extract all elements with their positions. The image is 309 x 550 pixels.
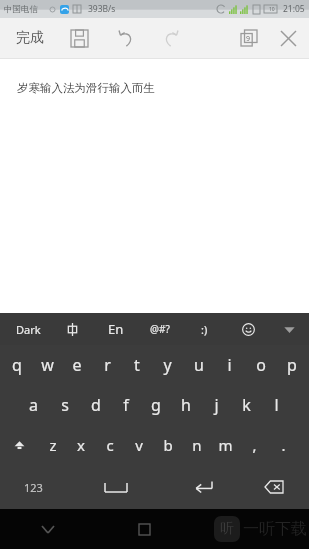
staticText: 完成 bbox=[16, 29, 44, 47]
button[interactable]: t bbox=[122, 345, 152, 385]
staticText: 21:05 bbox=[283, 3, 305, 15]
staticText: m bbox=[218, 435, 233, 455]
staticText: z bbox=[49, 435, 57, 455]
button[interactable]: Shift bbox=[0, 425, 39, 465]
staticText: 一听下载 bbox=[243, 519, 307, 539]
staticText: 10 bbox=[269, 6, 275, 13]
staticText: x bbox=[77, 435, 85, 455]
button[interactable]: :) bbox=[182, 313, 226, 345]
button[interactable]: l bbox=[261, 385, 291, 425]
staticText: p bbox=[287, 354, 297, 376]
staticText: k bbox=[242, 394, 251, 416]
staticText: y bbox=[163, 354, 172, 376]
staticText: j bbox=[214, 394, 219, 416]
button[interactable]: , bbox=[240, 425, 269, 465]
button[interactable]: u bbox=[183, 345, 214, 385]
button[interactable]: g bbox=[141, 385, 171, 425]
staticText: Dark bbox=[16, 322, 41, 337]
button[interactable]: 123 bbox=[0, 465, 66, 509]
staticText: q bbox=[12, 354, 22, 376]
button[interactable]: p bbox=[276, 345, 307, 385]
staticText: 393B/s bbox=[88, 3, 116, 15]
staticText: b bbox=[163, 435, 173, 455]
button[interactable]: v bbox=[124, 425, 153, 465]
staticText: :) bbox=[201, 322, 208, 337]
button[interactable]: w bbox=[32, 345, 62, 385]
button[interactable]: Space bbox=[66, 465, 166, 509]
staticText: 9 bbox=[246, 34, 251, 44]
button[interactable]: @#? bbox=[138, 313, 182, 345]
button[interactable]: . bbox=[269, 425, 298, 465]
button[interactable]: Dark bbox=[6, 313, 50, 345]
button[interactable]: k bbox=[231, 385, 261, 425]
button[interactable]: y bbox=[152, 345, 183, 385]
staticText: , bbox=[252, 435, 257, 455]
button[interactable]: Enter bbox=[166, 465, 239, 509]
staticText: @#? bbox=[150, 322, 170, 336]
staticText: s bbox=[61, 394, 69, 416]
button[interactable]: Emoji bbox=[226, 313, 270, 345]
button[interactable]: Save bbox=[64, 23, 94, 53]
staticText: f bbox=[123, 394, 129, 416]
button[interactable]: f bbox=[111, 385, 141, 425]
button[interactable]: j bbox=[201, 385, 231, 425]
button[interactable]: z bbox=[39, 425, 67, 465]
staticText: n bbox=[192, 435, 202, 455]
button[interactable]: i bbox=[214, 345, 245, 385]
button[interactable]: Backspace bbox=[239, 465, 309, 509]
button[interactable]: Recents bbox=[96, 509, 192, 549]
button[interactable]: s bbox=[49, 385, 80, 425]
staticText: r bbox=[104, 354, 111, 376]
staticText: 岁寒输入法为滑行输入而生 bbox=[17, 81, 155, 95]
staticText: u bbox=[194, 354, 204, 376]
staticText: a bbox=[29, 394, 38, 416]
button[interactable]: Tabs bbox=[233, 22, 265, 54]
button[interactable]: m bbox=[211, 425, 240, 465]
button[interactable]: x bbox=[67, 425, 95, 465]
staticText: 中国电信 bbox=[4, 4, 38, 15]
button[interactable]: Hide keyboard bbox=[270, 313, 309, 345]
staticText: w bbox=[41, 354, 54, 376]
staticText: o bbox=[256, 354, 266, 376]
button[interactable]: h bbox=[171, 385, 201, 425]
button[interactable]: 完成 bbox=[16, 29, 44, 47]
staticText: . bbox=[281, 435, 286, 455]
staticText: l bbox=[274, 394, 279, 416]
button[interactable]: b bbox=[153, 425, 182, 465]
button[interactable]: q bbox=[2, 345, 32, 385]
staticText: h bbox=[181, 394, 191, 416]
button[interactable]: a bbox=[18, 385, 49, 425]
button[interactable]: Undo bbox=[110, 23, 140, 53]
staticText: v bbox=[135, 435, 143, 455]
button[interactable]: Chinese input mode bbox=[50, 313, 94, 345]
staticText: i bbox=[227, 354, 232, 376]
button[interactable]: o bbox=[245, 345, 276, 385]
button[interactable]: d bbox=[80, 385, 111, 425]
staticText: t bbox=[134, 354, 140, 376]
button[interactable]: Redo bbox=[156, 23, 186, 53]
button[interactable]: e bbox=[62, 345, 92, 385]
button[interactable]: n bbox=[182, 425, 211, 465]
button[interactable]: Back bbox=[0, 509, 96, 549]
button[interactable]: En bbox=[94, 313, 138, 345]
staticText: d bbox=[91, 394, 101, 416]
staticText: 听 bbox=[220, 520, 234, 538]
staticText: 123 bbox=[24, 480, 43, 495]
staticText: En bbox=[108, 320, 124, 338]
button[interactable]: c bbox=[95, 425, 124, 465]
button[interactable]: r bbox=[92, 345, 122, 385]
staticText: e bbox=[72, 354, 82, 376]
button[interactable]: Close bbox=[271, 21, 305, 55]
staticText: c bbox=[106, 435, 114, 455]
staticText: g bbox=[151, 394, 161, 416]
